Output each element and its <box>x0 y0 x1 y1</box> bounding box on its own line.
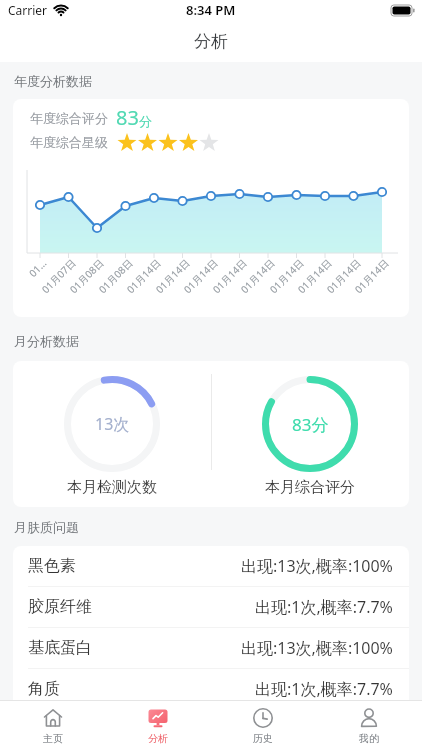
staticText: 月分析数据 <box>14 333 79 349</box>
button[interactable]: 历史 <box>210 701 316 750</box>
staticText: 01月14日 <box>323 256 362 295</box>
staticText: 01月14日 <box>266 256 305 295</box>
staticText: 01月07日 <box>38 256 77 295</box>
button[interactable]: 基底蛋白 <box>13 628 409 668</box>
button[interactable]: 主页 <box>0 701 105 750</box>
button[interactable]: 我的 <box>316 701 422 750</box>
staticText: Carrier <box>8 2 48 18</box>
staticText: 我的 <box>359 732 379 745</box>
staticText: 01月08日 <box>95 256 134 295</box>
staticText: 01月14日 <box>209 256 248 295</box>
staticText: 01月14日 <box>294 256 333 295</box>
staticText: 主页 <box>43 732 63 745</box>
staticText: 01月14日 <box>237 256 276 295</box>
button[interactable]: 黑色素 <box>13 546 409 586</box>
staticText: 出现:1次,概率:7.7% <box>255 596 393 618</box>
staticText: 分析 <box>148 732 168 745</box>
staticText: 胶原纤维 <box>28 597 92 617</box>
staticText: 出现:13次,概率:100% <box>241 637 393 659</box>
staticText: 01月14日 <box>123 256 162 295</box>
staticText: 分析 <box>194 31 228 52</box>
staticText: 年度分析数据 <box>14 73 92 89</box>
button[interactable]: 角质 <box>13 669 409 709</box>
staticText: 83分 <box>292 413 329 436</box>
staticText: 83 <box>116 104 139 131</box>
staticText: 出现:13次,概率:100% <box>241 555 393 577</box>
staticText: 13次 <box>95 413 130 435</box>
staticText: 年度综合星级 <box>30 134 108 150</box>
staticText: 历史 <box>253 732 273 745</box>
staticText: 01月14日 <box>351 256 390 295</box>
staticText: 分 <box>139 113 152 129</box>
staticText: 01月14日 <box>152 256 191 295</box>
button[interactable]: 胶原纤维 <box>13 587 409 627</box>
staticText: 黑色素 <box>28 556 76 576</box>
staticText: 本月综合评分 <box>265 478 355 497</box>
button[interactable]: 分析 <box>105 701 210 750</box>
staticText: 01月14日 <box>180 256 219 295</box>
staticText: 8:34 PM <box>186 1 236 19</box>
staticText: 月肤质问题 <box>14 519 79 535</box>
staticText: 01… <box>26 256 48 278</box>
staticText: 年度综合评分 <box>30 110 108 126</box>
staticText: 基底蛋白 <box>28 638 92 658</box>
staticText: 角质 <box>28 679 60 699</box>
staticText: 出现:1次,概率:7.7% <box>255 678 393 700</box>
staticText: 本月检测次数 <box>67 478 157 497</box>
staticText: 01月08日 <box>66 256 105 295</box>
